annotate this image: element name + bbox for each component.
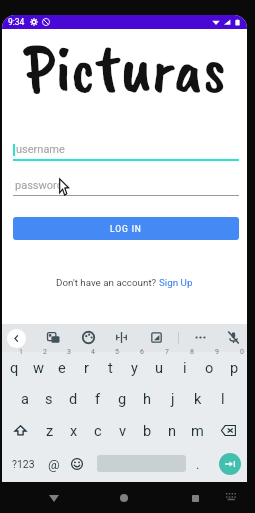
- button[interactable]: c: [86, 414, 110, 446]
- button[interactable]: Enter: [219, 453, 241, 475]
- button[interactable]: a: [13, 382, 37, 414]
- button[interactable]: n: [160, 414, 185, 446]
- button[interactable]: u: [147, 351, 172, 383]
- button[interactable]: Back: [7, 329, 26, 348]
- button[interactable]: p: [222, 351, 247, 383]
- button[interactable]: Themes: [78, 327, 98, 347]
- button[interactable]: Switch keyboard: [224, 488, 240, 504]
- staticText: o: [205, 359, 214, 376]
- staticText: y: [131, 359, 138, 376]
- button[interactable]: m: [185, 414, 210, 446]
- staticText: c: [94, 422, 102, 439]
- staticText: username: [16, 143, 65, 156]
- button[interactable]: o: [197, 351, 222, 383]
- button[interactable]: Clipboard: [146, 327, 166, 347]
- button[interactable]: Stickers: [43, 327, 63, 347]
- staticText: r: [84, 359, 89, 376]
- button[interactable]: z: [38, 414, 62, 446]
- button[interactable]: Voice input off: [223, 327, 243, 347]
- staticText: 3: [67, 348, 71, 356]
- staticText: q: [10, 359, 19, 376]
- button[interactable]: g: [110, 382, 135, 414]
- staticText: l: [221, 390, 225, 407]
- button[interactable]: l: [210, 382, 235, 414]
- button[interactable]: q: [2, 351, 26, 383]
- button[interactable]: Recent apps: [182, 485, 208, 511]
- button[interactable]: e: [50, 351, 74, 383]
- button[interactable]: Translate: [111, 327, 131, 347]
- button[interactable]: y: [122, 351, 147, 383]
- staticText: 5: [115, 348, 119, 356]
- staticText: j: [171, 390, 175, 407]
- staticText: b: [143, 422, 152, 439]
- staticText: d: [69, 390, 78, 407]
- button[interactable]: v: [110, 414, 135, 446]
- button[interactable]: r: [74, 351, 98, 383]
- staticText: @: [48, 457, 60, 472]
- staticText: a: [21, 390, 29, 407]
- staticText: password: [15, 179, 63, 192]
- staticText: f: [95, 390, 101, 407]
- staticText: e: [58, 359, 66, 376]
- staticText: g: [118, 390, 127, 407]
- button[interactable]: More options: [190, 327, 210, 347]
- staticText: 2: [43, 348, 47, 356]
- button[interactable]: Backspace: [210, 414, 247, 446]
- button[interactable]: f: [85, 382, 110, 414]
- staticText: 9:34: [8, 17, 25, 27]
- button[interactable]: i: [172, 351, 197, 383]
- staticText: 9: [215, 348, 219, 356]
- button[interactable]: w: [26, 351, 50, 383]
- staticText: w: [33, 359, 44, 376]
- staticText: s: [45, 390, 53, 407]
- button[interactable]: .: [188, 453, 208, 475]
- button[interactable]: h: [135, 382, 160, 414]
- staticText: 4: [91, 348, 95, 356]
- button[interactable]: s: [37, 382, 61, 414]
- staticText: i: [183, 359, 187, 376]
- button[interactable]: @: [42, 453, 65, 475]
- button[interactable]: LOG IN: [13, 217, 239, 240]
- staticText: Don't have an account?: [56, 277, 159, 288]
- staticText: ?123: [12, 458, 35, 470]
- staticText: z: [46, 422, 54, 439]
- staticText: v: [119, 422, 127, 439]
- button[interactable]: Back: [41, 485, 67, 511]
- button[interactable]: k: [185, 382, 210, 414]
- button[interactable]: Home: [111, 485, 137, 511]
- button[interactable]: d: [61, 382, 85, 414]
- staticText: m: [191, 422, 204, 439]
- staticText: Picturas: [23, 26, 226, 112]
- staticText: .: [196, 457, 200, 472]
- staticText: p: [230, 359, 239, 376]
- staticText: h: [143, 390, 152, 407]
- button[interactable]: password: [13, 179, 239, 199]
- staticText: 1: [19, 348, 23, 356]
- staticText: u: [155, 359, 164, 376]
- button[interactable]: username: [13, 143, 239, 163]
- staticText: Sign Up: [159, 277, 193, 288]
- button[interactable]: x: [62, 414, 86, 446]
- staticText: 6: [140, 348, 144, 356]
- staticText: x: [70, 422, 78, 439]
- staticText: 7: [165, 348, 169, 356]
- button[interactable]: j: [160, 382, 185, 414]
- staticText: 8: [190, 348, 194, 356]
- button[interactable]: Emoji: [65, 453, 88, 475]
- button[interactable]: t: [98, 351, 122, 383]
- staticText: 0: [240, 348, 244, 356]
- button[interactable]: ?123: [5, 453, 41, 475]
- staticText: n: [168, 422, 177, 439]
- staticText: LOG IN: [110, 224, 142, 234]
- button[interactable]: Sign Up: [159, 277, 193, 288]
- button[interactable]: Shift: [2, 414, 38, 446]
- staticText: k: [194, 390, 202, 407]
- button[interactable]: b: [135, 414, 160, 446]
- staticText: t: [108, 359, 113, 376]
